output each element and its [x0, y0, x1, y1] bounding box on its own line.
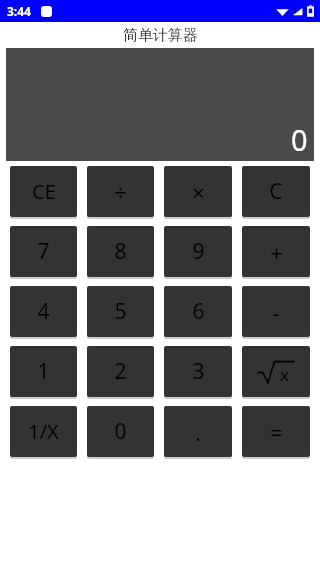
button[interactable]: 2: [87, 346, 154, 397]
staticText: 8: [114, 237, 127, 266]
button[interactable]: 8: [87, 226, 154, 277]
button[interactable]: 1/X: [10, 406, 77, 457]
button[interactable]: CE: [10, 166, 77, 217]
staticText: -: [272, 297, 280, 327]
staticText: 7: [37, 237, 50, 266]
staticText: x: [280, 363, 289, 386]
button[interactable]: ×: [164, 166, 232, 217]
button[interactable]: 5: [87, 286, 154, 337]
button[interactable]: Square root: [242, 346, 310, 397]
button[interactable]: -: [242, 286, 310, 337]
button[interactable]: 1: [10, 346, 77, 397]
staticText: 2: [114, 357, 127, 386]
staticText: ×: [192, 177, 205, 207]
staticText: 1: [37, 357, 50, 386]
button[interactable]: 4: [10, 286, 77, 337]
staticText: 5: [114, 297, 127, 326]
button[interactable]: 3: [164, 346, 232, 397]
button[interactable]: 0: [87, 406, 154, 457]
staticText: 4: [37, 297, 50, 326]
staticText: 9: [192, 237, 205, 266]
staticText: =: [270, 417, 283, 447]
staticText: +: [270, 237, 283, 267]
staticText: 3: [192, 357, 205, 386]
staticText: CE: [32, 178, 56, 205]
staticText: 0: [114, 417, 127, 446]
staticText: 简单计算器: [123, 26, 198, 45]
staticText: .: [195, 417, 201, 447]
button[interactable]: C: [242, 166, 310, 217]
staticText: 6: [192, 297, 205, 326]
button[interactable]: =: [242, 406, 310, 457]
staticText: 3:44: [7, 3, 31, 19]
button[interactable]: 6: [164, 286, 232, 337]
staticText: 1/X: [28, 418, 59, 445]
button[interactable]: .: [164, 406, 232, 457]
button[interactable]: ÷: [87, 166, 154, 217]
staticText: C: [269, 177, 283, 206]
button[interactable]: 9: [164, 226, 232, 277]
staticText: 0: [291, 120, 308, 159]
button[interactable]: +: [242, 226, 310, 277]
button[interactable]: 7: [10, 226, 77, 277]
staticText: ÷: [114, 177, 127, 207]
